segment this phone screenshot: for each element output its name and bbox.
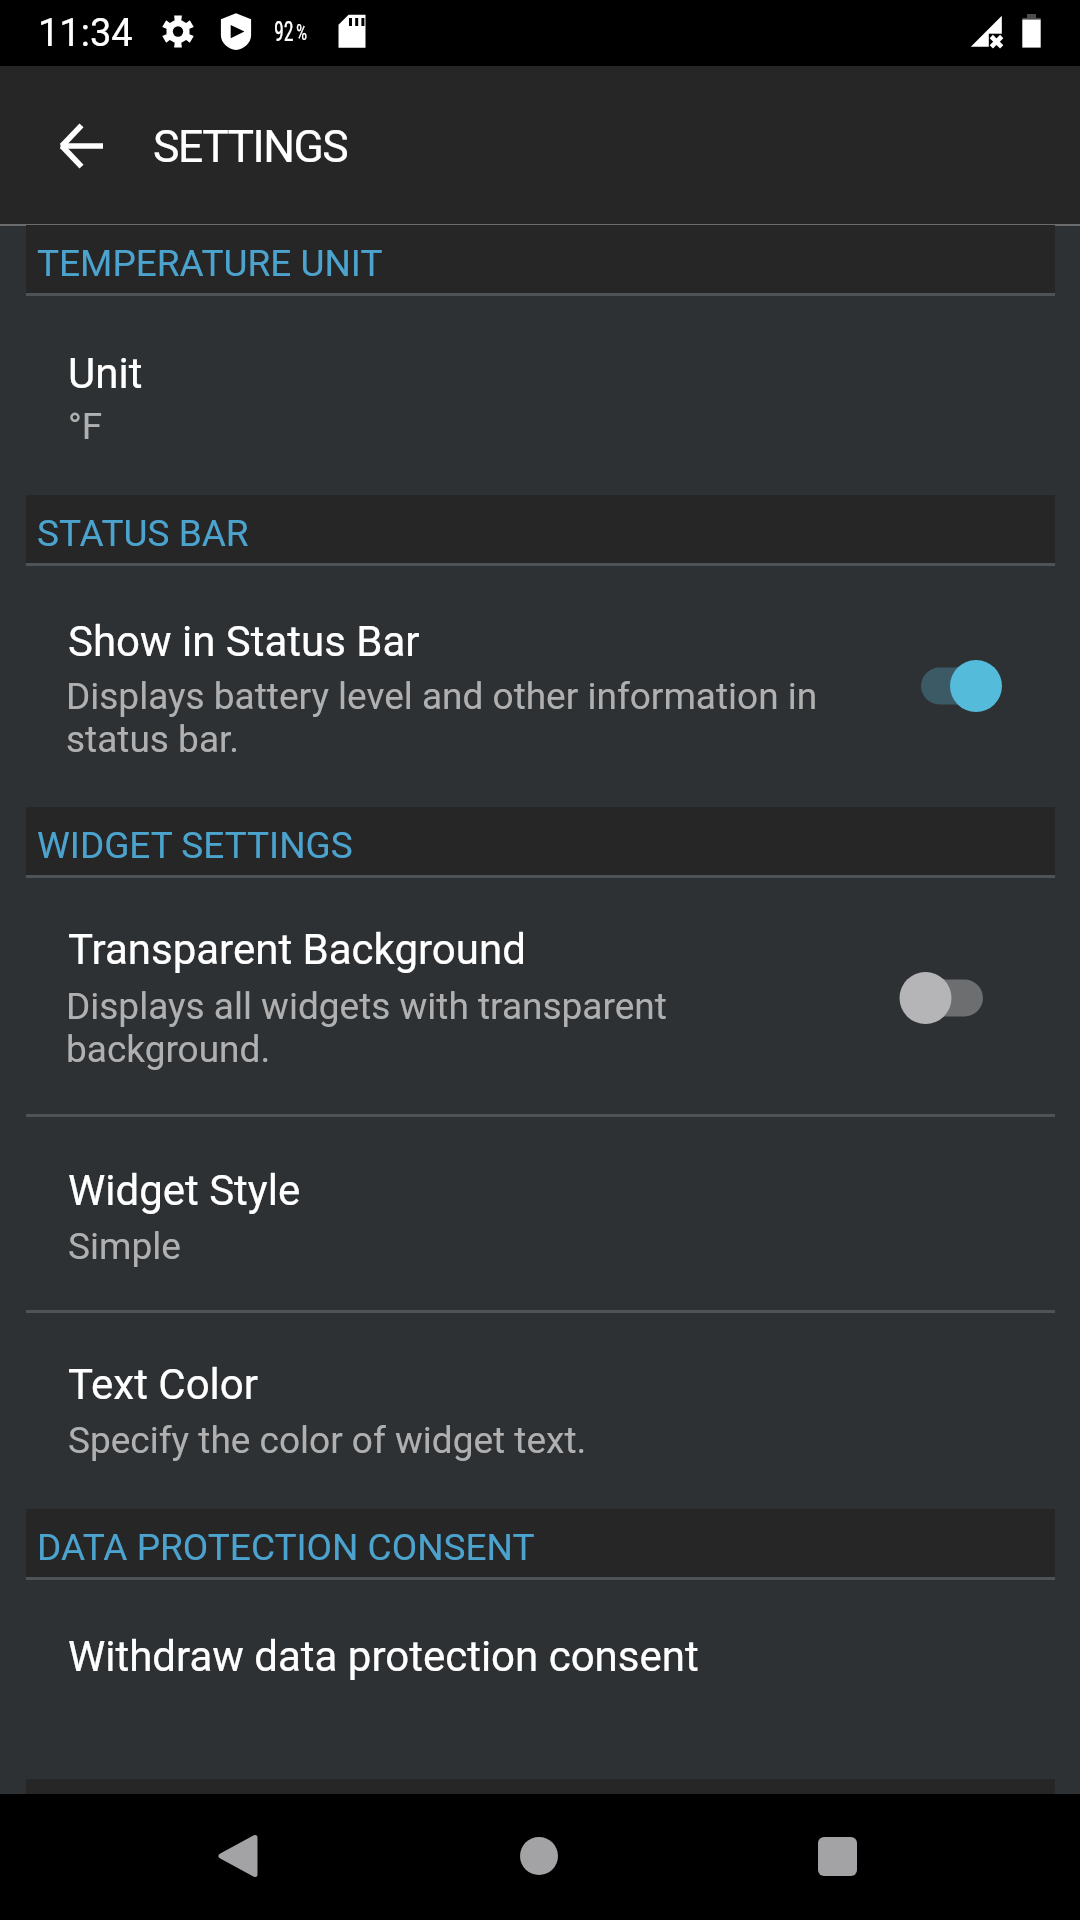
staticText: Unit [68,349,143,398]
button[interactable]: Widget Style [0,1117,1080,1310]
staticText: TEMPERATURE UNIT [37,242,383,285]
staticText: DATA PROTECTION CONSENT [37,1526,535,1569]
button[interactable]: Text Color [0,1313,1080,1509]
staticText: SETTINGS [153,121,348,173]
button[interactable]: Home [479,1796,599,1916]
staticText: Displays battery level and other informa… [66,675,818,718]
staticText: 11:34 [38,11,133,56]
staticText: Text Color [68,1360,258,1409]
button[interactable]: Recent apps [777,1796,897,1916]
staticText: status bar. [66,718,240,761]
staticText: °F [68,405,103,448]
button[interactable]: Show in Status Bar [0,565,1080,807]
button[interactable]: Transparent Background [896,962,1008,1034]
staticText: 92 [274,15,294,48]
staticText: Simple [68,1225,181,1268]
staticText: Displays all widgets with transparent [66,985,667,1028]
staticText: Widget Style [68,1166,301,1215]
staticText: Show in Status Bar [68,617,420,666]
button[interactable]: Show in Status Bar [896,650,1008,722]
button[interactable]: Back [178,1796,298,1916]
staticText: WIDGET SETTINGS [37,824,353,867]
staticText: Transparent Background [68,925,526,974]
staticText: background. [66,1028,271,1071]
button[interactable]: Unit [0,296,1080,495]
staticText: Specify the color of widget text. [68,1419,587,1462]
staticText: Withdraw data protection consent [68,1632,699,1681]
button[interactable]: Withdraw data protection consent [0,1578,1080,1779]
button[interactable]: Navigate up [26,91,136,199]
button[interactable]: Transparent Background [0,876,1080,1114]
staticText: % [296,20,307,45]
staticText: STATUS BAR [37,512,249,555]
